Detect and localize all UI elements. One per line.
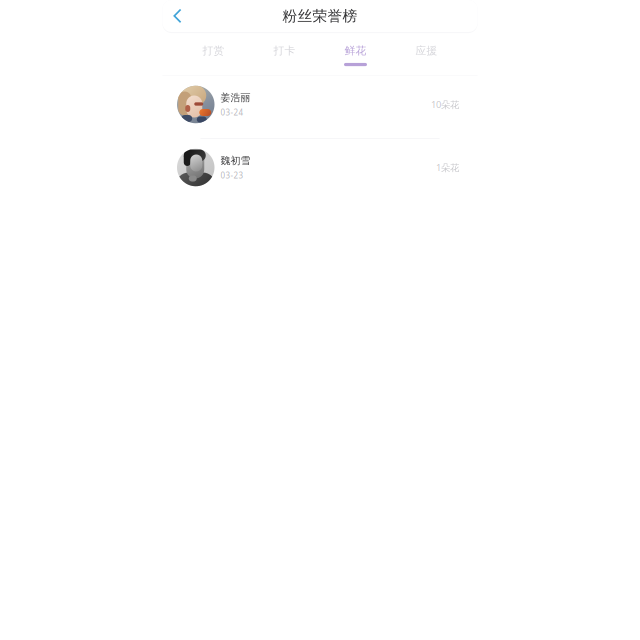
button[interactable]: 应援 bbox=[391, 32, 462, 75]
button[interactable]: 打卡 bbox=[249, 32, 320, 75]
button[interactable]: 魏初雪 bbox=[162, 139, 477, 201]
staticText: 魏初雪 bbox=[220, 154, 250, 167]
staticText: 鲜花 bbox=[344, 44, 366, 57]
button[interactable]: 打赏 bbox=[178, 32, 249, 75]
staticText: 粉丝荣誉榜 bbox=[282, 7, 357, 25]
staticText: 打卡 bbox=[273, 44, 295, 57]
staticText: 03-24 bbox=[220, 107, 243, 118]
staticText: 姜浩丽 bbox=[220, 91, 250, 104]
staticText: 03-23 bbox=[220, 170, 243, 181]
button[interactable]: 鲜花 bbox=[320, 32, 391, 75]
staticText: 1朵花 bbox=[436, 161, 459, 174]
staticText: 应援 bbox=[415, 44, 437, 57]
staticText: 打赏 bbox=[202, 44, 224, 57]
button[interactable]: 姜浩丽 bbox=[162, 76, 477, 138]
staticText: 10朵花 bbox=[431, 98, 459, 111]
button[interactable]: Back bbox=[164, 0, 190, 32]
